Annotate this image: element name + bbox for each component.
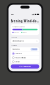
staticText: Stretch (15, 61, 20, 63)
button[interactable]: Start wind-down (11, 64, 39, 69)
staticText: Read 15 minutes (15, 57, 26, 58)
staticText: 9:41 (11, 13, 14, 15)
button[interactable]: Wind-down at 21:30 (11, 39, 39, 43)
staticText: Evening Wind-down (11, 19, 39, 23)
staticText: Start wind-down (19, 66, 31, 67)
button[interactable]: Sleep goal (11, 47, 39, 51)
staticText: TONIGHT (11, 45, 17, 46)
staticText: 7h 30m (32, 48, 37, 50)
staticText: ROUTINE (11, 36, 17, 38)
button[interactable]: Dim the lights (11, 52, 39, 55)
staticText: Sleep goal (12, 48, 19, 50)
staticText: Dim the lights (15, 53, 22, 54)
button[interactable]: Stretch (11, 60, 39, 63)
staticText: Tonight's balance (12, 26, 25, 28)
staticText: Rest (23, 32, 26, 33)
button[interactable]: Read 15 minutes (11, 56, 39, 59)
staticText: Wind-down at 21:30 (12, 40, 24, 42)
